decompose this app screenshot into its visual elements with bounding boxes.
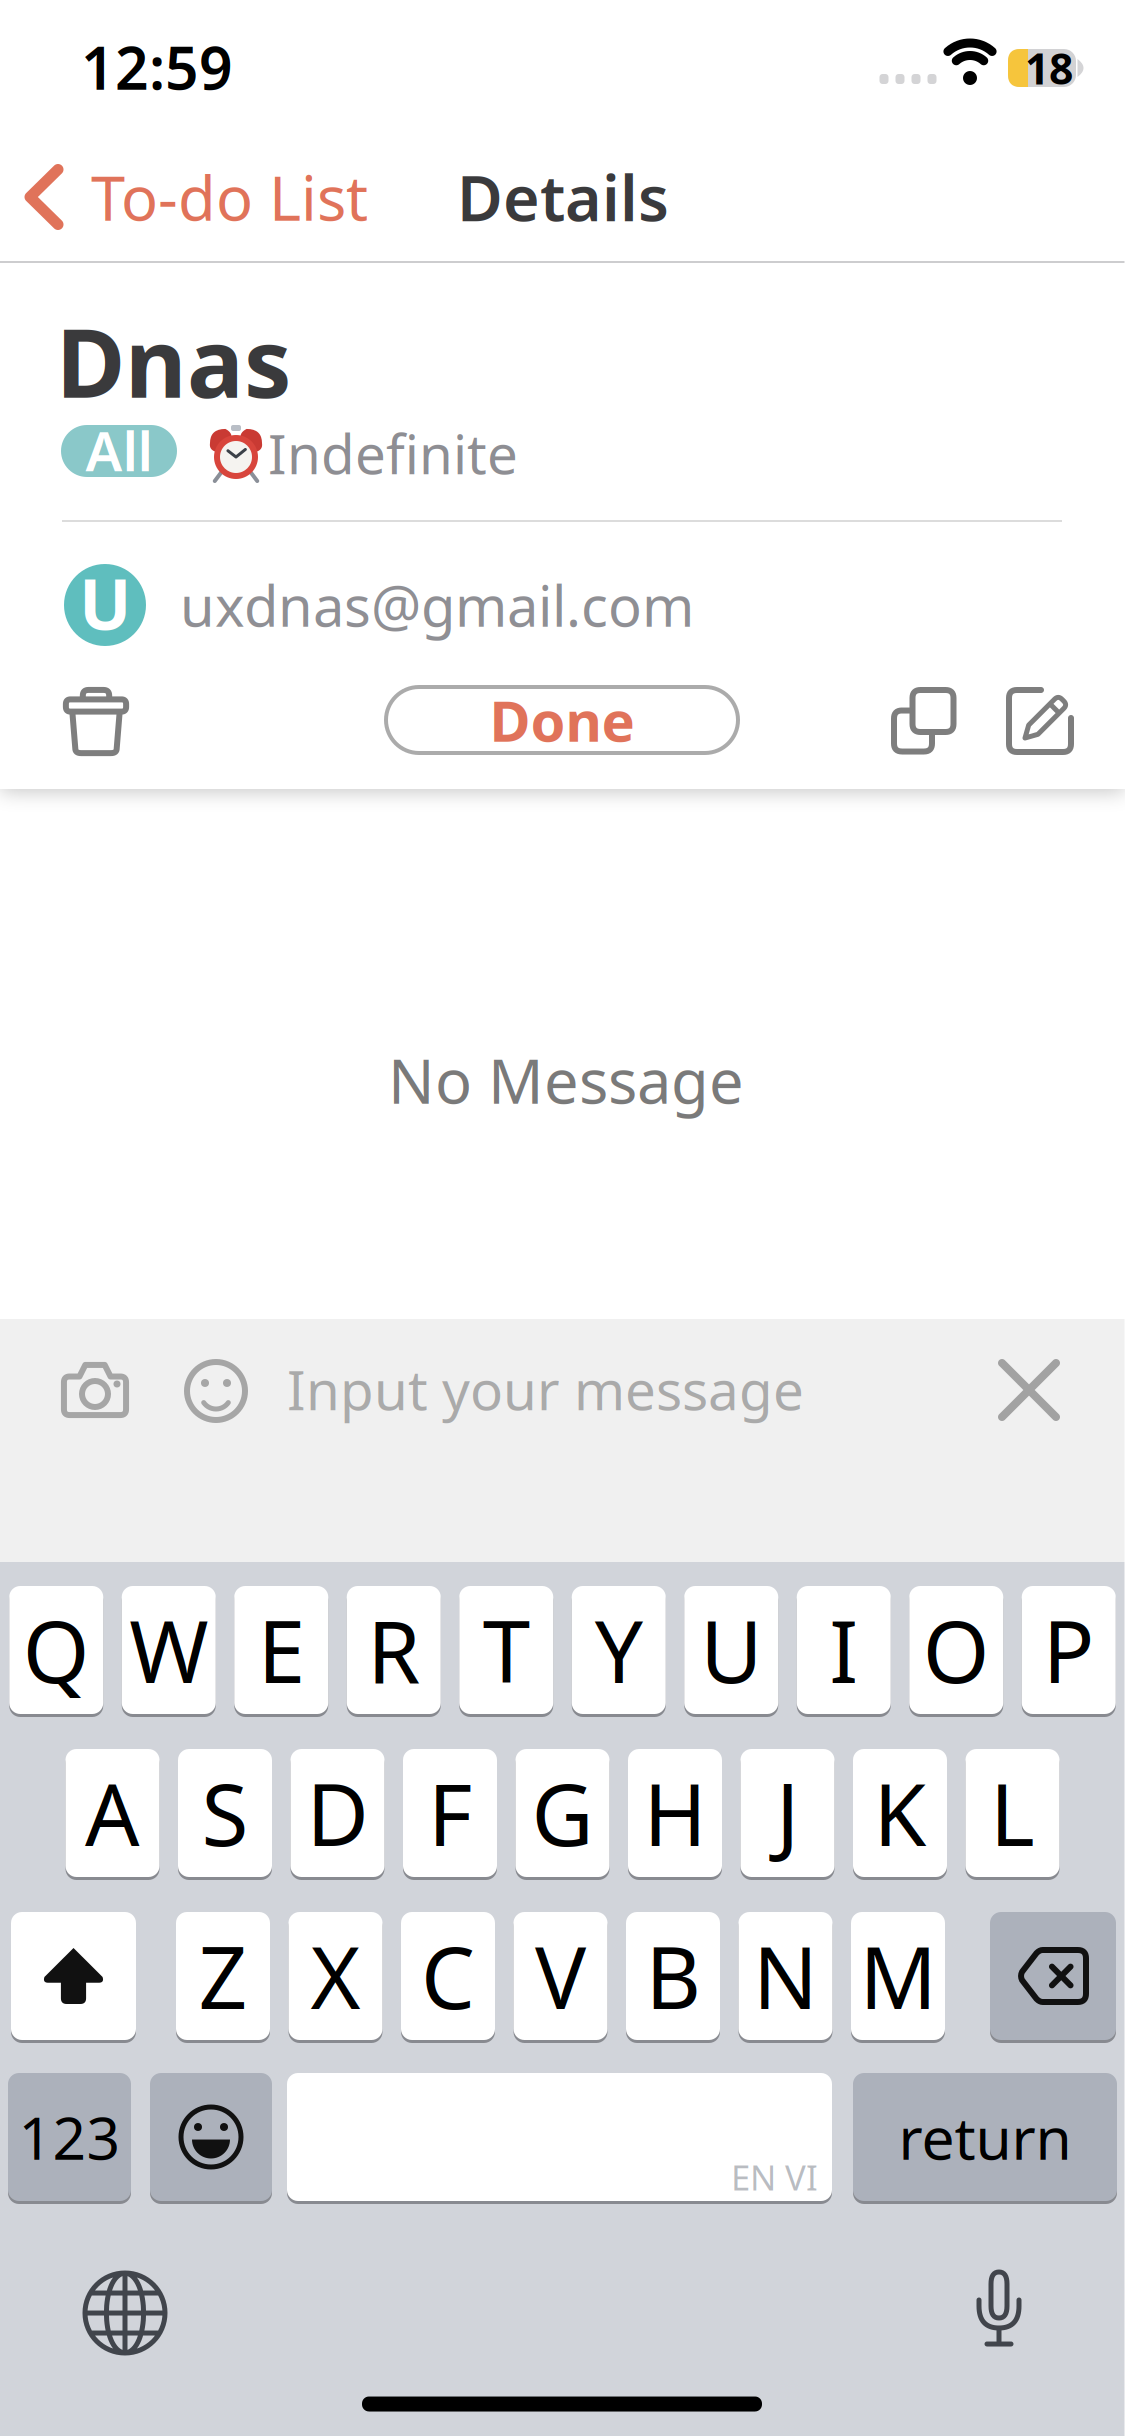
staticText: 18 [1025, 40, 1073, 96]
staticText: D [306, 1756, 368, 1870]
button[interactable]: K [853, 1747, 947, 1878]
staticText: F [428, 1756, 472, 1870]
button[interactable]: U [684, 1584, 778, 1715]
button[interactable]: E [234, 1584, 328, 1715]
button[interactable]: C [401, 1910, 495, 2041]
staticText: EN VI [731, 2154, 818, 2200]
staticText: U [79, 557, 131, 649]
button[interactable]: H [628, 1747, 722, 1878]
staticText: All [85, 414, 152, 486]
staticText: G [531, 1756, 593, 1870]
staticText: Details [457, 155, 669, 239]
staticText: R [367, 1593, 420, 1707]
button[interactable]: Next keyboard [85, 2273, 165, 2353]
button[interactable]: T [459, 1584, 553, 1715]
button[interactable]: G [515, 1747, 609, 1878]
staticText: L [990, 1756, 1035, 1870]
staticText: X [310, 1919, 360, 2033]
button[interactable]: P [1022, 1584, 1116, 1715]
button[interactable]: return [853, 2071, 1117, 2202]
button[interactable]: Close [1002, 1363, 1056, 1417]
staticText: H [643, 1756, 706, 1870]
button[interactable]: D [290, 1747, 384, 1878]
staticText: M [859, 1919, 936, 2033]
button[interactable]: Copy [891, 689, 955, 753]
staticText: V [535, 1919, 586, 2033]
button[interactable]: O [909, 1584, 1003, 1715]
button[interactable]: M [851, 1910, 945, 2041]
button[interactable]: N [738, 1910, 832, 2041]
button[interactable]: Camera [60, 1360, 130, 1420]
staticText: C [421, 1919, 475, 2033]
staticText: Input your message [287, 1353, 804, 1425]
staticText: A [85, 1756, 140, 1870]
staticText: To-do List [91, 156, 368, 238]
button[interactable]: Z [176, 1910, 270, 2041]
button[interactable]: V [513, 1910, 607, 2041]
button[interactable]: R [347, 1584, 441, 1715]
staticText: Indefinite [268, 417, 518, 489]
staticText: N [753, 1919, 818, 2033]
staticText: I [829, 1593, 858, 1707]
staticText: 12:59 [81, 28, 233, 106]
button[interactable]: Dictate [974, 2272, 1024, 2352]
staticText: Q [23, 1593, 90, 1707]
staticText: S [201, 1756, 248, 1870]
button[interactable]: X [288, 1910, 382, 2041]
button[interactable]: Back [30, 156, 368, 238]
button[interactable]: Emoji [184, 1359, 248, 1423]
button[interactable]: 123 [8, 2071, 131, 2202]
staticText: J [776, 1756, 799, 1870]
staticText: Dnas [56, 298, 292, 424]
button[interactable]: Emoji [150, 2071, 272, 2202]
staticText: W [129, 1593, 208, 1707]
button[interactable]: Q [9, 1584, 103, 1715]
staticText: Y [595, 1593, 643, 1707]
staticText: No Message [388, 1039, 744, 1121]
staticText: B [645, 1919, 700, 2033]
staticText: Done [489, 683, 634, 757]
button[interactable]: I [797, 1584, 891, 1715]
button[interactable]: F [403, 1747, 497, 1878]
button[interactable]: Y [572, 1584, 666, 1715]
staticText: return [898, 2098, 1071, 2176]
staticText: E [258, 1593, 305, 1707]
button[interactable]: J [740, 1747, 834, 1878]
button[interactable]: Delete [990, 1910, 1116, 2041]
staticText: T [483, 1593, 530, 1707]
button[interactable]: Done [384, 685, 740, 755]
button[interactable]: B [626, 1910, 720, 2041]
staticText: U [700, 1593, 762, 1707]
staticText: O [923, 1593, 990, 1707]
staticText: P [1043, 1593, 1095, 1707]
button[interactable]: S [178, 1747, 272, 1878]
staticText: uxdnas@gmail.com [180, 568, 694, 642]
staticText: 123 [18, 2098, 120, 2176]
staticText: Z [198, 1919, 247, 2033]
button[interactable]: L [965, 1747, 1059, 1878]
button[interactable]: Shift [11, 1910, 136, 2041]
staticText: K [873, 1756, 926, 1870]
button[interactable]: A [65, 1747, 159, 1878]
button[interactable]: Delete [64, 689, 128, 755]
button[interactable]: W [122, 1584, 216, 1715]
button[interactable]: Edit [1007, 688, 1073, 754]
